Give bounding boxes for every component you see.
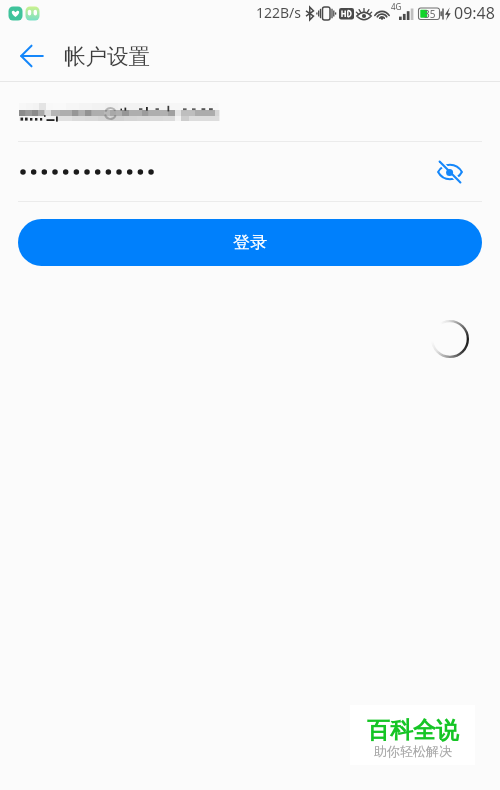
- button[interactable]: [0, 83, 500, 141]
- staticText: 帐户设置: [64, 43, 150, 70]
- button[interactable]: 登录: [18, 219, 482, 266]
- staticText: 助你轻松解决: [374, 743, 452, 759]
- staticText: 登录: [233, 232, 267, 253]
- staticText: 35: [424, 7, 436, 21]
- staticText: 4G: [391, 1, 402, 12]
- staticText: 122B/s: [256, 3, 302, 22]
- button[interactable]: Back: [10, 34, 54, 78]
- button[interactable]: [18, 142, 428, 201]
- staticText: 09:48: [454, 2, 495, 24]
- button[interactable]: Show password: [432, 154, 468, 190]
- staticText: 百科全说: [367, 716, 459, 745]
